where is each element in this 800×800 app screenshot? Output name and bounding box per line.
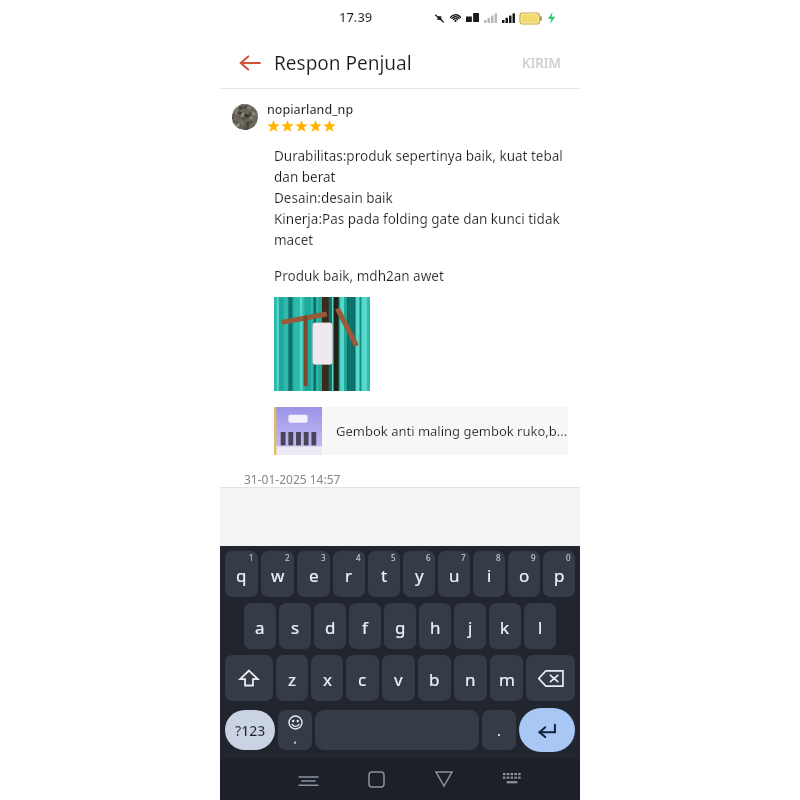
staticText: 17.39: [339, 8, 373, 26]
staticText: KIRIM: [522, 54, 562, 72]
staticText: 5: [391, 552, 396, 563]
staticText: Produk baik, mdh2an awet: [274, 267, 444, 285]
staticText: ,: [294, 733, 297, 745]
staticText: s: [291, 616, 300, 639]
staticText: g: [395, 616, 406, 639]
button[interactable]: w: [261, 551, 294, 597]
staticText: v: [394, 668, 403, 691]
button[interactable]: d: [314, 603, 346, 649]
staticText: t: [381, 564, 388, 587]
staticText: 9: [531, 552, 536, 563]
button[interactable]: b: [418, 655, 451, 701]
staticText: f: [362, 616, 368, 639]
button[interactable]: f: [349, 603, 381, 649]
staticText: 6: [426, 552, 431, 563]
button[interactable]: Shift: [225, 655, 273, 701]
staticText: i: [487, 564, 492, 587]
button[interactable]: s: [279, 603, 311, 649]
button[interactable]: y: [403, 551, 435, 597]
button[interactable]: k: [489, 603, 521, 649]
staticText: 4: [356, 552, 361, 563]
button[interactable]: Hide keyboard: [478, 758, 546, 800]
button[interactable]: ?123: [225, 710, 275, 750]
staticText: d: [325, 616, 336, 639]
button[interactable]: a: [244, 603, 276, 649]
button[interactable]: KIRIM: [510, 46, 574, 80]
staticText: ?123: [235, 721, 266, 740]
staticText: j: [468, 616, 473, 639]
staticText: u: [449, 564, 460, 587]
staticText: .: [497, 720, 502, 740]
staticText: h: [430, 616, 441, 639]
button[interactable]: n: [454, 655, 487, 701]
staticText: a: [255, 616, 265, 639]
staticText: r: [345, 564, 353, 587]
button[interactable]: v: [382, 655, 415, 701]
staticText: k: [500, 616, 510, 639]
staticText: l: [538, 616, 543, 639]
staticText: z: [288, 668, 296, 691]
button[interactable]: Back: [410, 758, 478, 800]
staticText: p: [554, 564, 565, 587]
staticText: n: [465, 668, 476, 691]
button[interactable]: g: [384, 603, 416, 649]
button[interactable]: Emoji: [278, 710, 312, 750]
button[interactable]: Enter: [519, 708, 575, 752]
staticText: nopiarland_np: [267, 101, 354, 118]
button[interactable]: j: [454, 603, 486, 649]
staticText: 31-01-2025 14:57: [244, 471, 341, 487]
staticText: w: [271, 564, 285, 587]
staticText: 8: [496, 552, 501, 563]
staticText: x: [323, 668, 332, 691]
button[interactable]: Period: [482, 710, 516, 750]
button[interactable]: q: [225, 551, 258, 597]
staticText: 2: [285, 552, 290, 563]
staticText: c: [358, 668, 367, 691]
button[interactable]: Home: [342, 758, 410, 800]
staticText: 7: [461, 552, 466, 563]
button[interactable]: z: [276, 655, 308, 701]
staticText: 3: [321, 552, 326, 563]
staticText: Durabilitas:produk sepertinya baik, kuat…: [274, 147, 563, 249]
staticText: q: [236, 564, 247, 587]
staticText: Respon Penjual: [274, 50, 412, 76]
staticText: m: [499, 668, 515, 691]
staticText: b: [429, 668, 440, 691]
button[interactable]: c: [346, 655, 379, 701]
staticText: o: [519, 564, 530, 587]
button[interactable]: i: [473, 551, 505, 597]
button[interactable]: u: [438, 551, 470, 597]
button[interactable]: m: [490, 655, 523, 701]
button[interactable]: Recent apps: [274, 758, 342, 800]
staticText: 1: [249, 552, 254, 563]
button[interactable]: p: [543, 551, 575, 597]
staticText: e: [309, 564, 319, 587]
button[interactable]: Backspace: [526, 655, 575, 701]
button[interactable]: Back: [230, 43, 270, 83]
button[interactable]: l: [524, 603, 556, 649]
staticText: 0: [566, 552, 571, 563]
button[interactable]: t: [368, 551, 400, 597]
button[interactable]: o: [508, 551, 540, 597]
button[interactable]: r: [333, 551, 365, 597]
staticText: y: [415, 564, 424, 587]
staticText: Gembok anti maling gembok ruko,b...: [336, 422, 568, 440]
button[interactable]: x: [311, 655, 343, 701]
button[interactable]: e: [297, 551, 330, 597]
button[interactable]: h: [419, 603, 451, 649]
button[interactable]: Gembok anti maling gembok ruko,b...: [274, 407, 568, 455]
